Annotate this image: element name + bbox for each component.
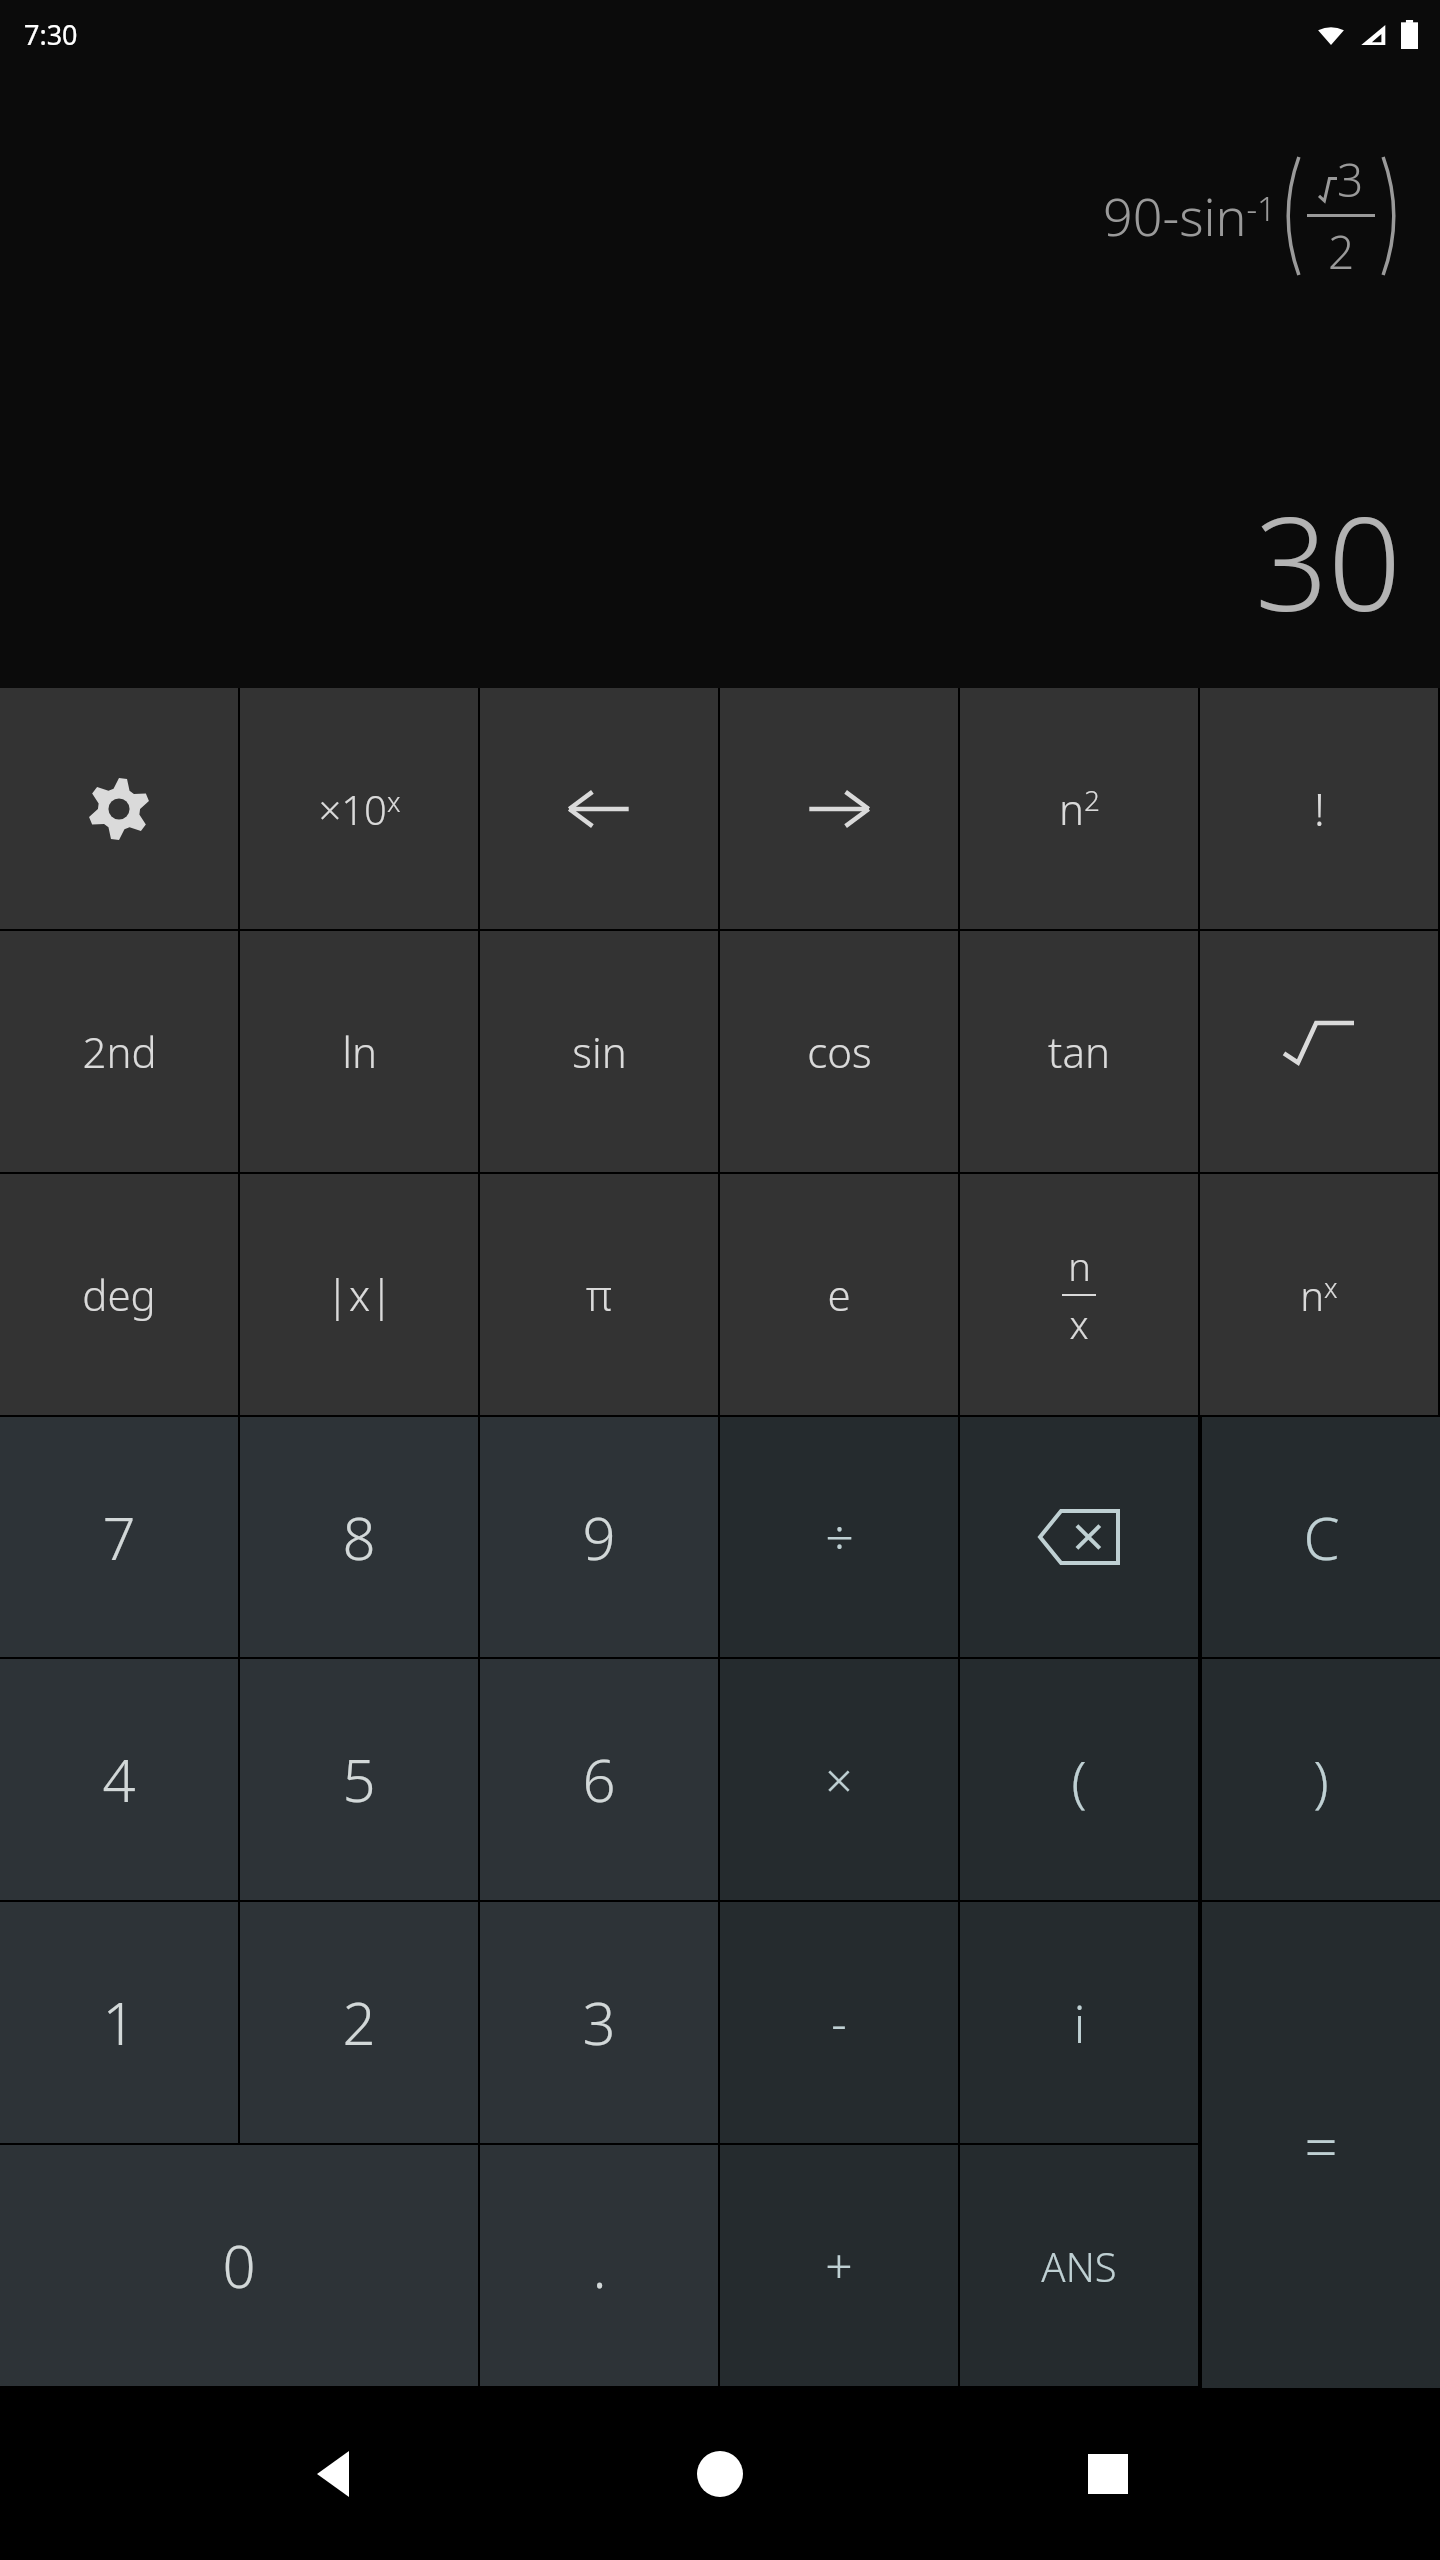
button[interactable]: sin bbox=[480, 931, 718, 1172]
staticText: 9 bbox=[582, 1498, 616, 1577]
staticText: ×10x bbox=[318, 782, 401, 836]
button[interactable]: × bbox=[720, 1659, 958, 1900]
staticText: sin bbox=[572, 1023, 627, 1080]
staticText: - bbox=[831, 1990, 847, 2055]
button[interactable]: Move left bbox=[480, 688, 718, 929]
button[interactable]: - bbox=[720, 1902, 958, 2143]
button[interactable]: ×10x bbox=[240, 688, 478, 929]
staticText: × bbox=[825, 1747, 853, 1812]
button[interactable]: 5 bbox=[240, 1659, 478, 1900]
button[interactable]: cos bbox=[720, 931, 958, 1172]
staticText: 8 bbox=[342, 1498, 376, 1577]
button[interactable]: e bbox=[720, 1174, 958, 1415]
button[interactable]: 1 bbox=[0, 1902, 238, 2143]
button[interactable]: Move right bbox=[720, 688, 958, 929]
button[interactable]: 8 bbox=[240, 1417, 478, 1657]
staticText: 2 bbox=[342, 1983, 376, 2062]
staticText: tan bbox=[1048, 1023, 1110, 1080]
staticText: 0 bbox=[222, 2226, 256, 2305]
staticText: n2 bbox=[1059, 780, 1100, 837]
staticText: C bbox=[1303, 1498, 1340, 1577]
button[interactable]: 2 bbox=[240, 1902, 478, 2143]
staticText: ANS bbox=[1041, 2239, 1117, 2293]
button[interactable]: n2 bbox=[960, 688, 1198, 929]
staticText: 1 bbox=[102, 1983, 136, 2062]
button[interactable]: ln bbox=[240, 931, 478, 1172]
staticText: ln bbox=[342, 1023, 377, 1080]
staticText: 7:30 bbox=[24, 16, 78, 53]
staticText: e bbox=[827, 1266, 851, 1323]
staticText: 6 bbox=[582, 1740, 616, 1819]
staticText: 2nd bbox=[82, 1023, 157, 1080]
button[interactable]: 6 bbox=[480, 1659, 718, 1900]
staticText: 3 bbox=[1337, 148, 1364, 211]
button[interactable]: 0 bbox=[0, 2145, 478, 2386]
staticText: ! bbox=[1314, 779, 1325, 839]
staticText: = bbox=[1304, 2106, 1338, 2185]
button[interactable]: + bbox=[720, 2145, 958, 2386]
staticText: x bbox=[1069, 1298, 1089, 1350]
staticText: ÷ bbox=[825, 1503, 854, 1571]
staticText: . bbox=[592, 2226, 607, 2305]
button[interactable]: ANS bbox=[960, 2145, 1198, 2386]
button[interactable]: Recents bbox=[1053, 2419, 1163, 2529]
staticText: 3 bbox=[582, 1983, 616, 2062]
button[interactable]: |x| bbox=[240, 1174, 478, 1415]
staticText: 5 bbox=[342, 1740, 376, 1819]
button[interactable]: 7 bbox=[0, 1417, 238, 1657]
staticText: nx bbox=[1300, 1268, 1338, 1322]
button[interactable]: ÷ bbox=[720, 1417, 958, 1657]
button[interactable]: Back bbox=[278, 2419, 388, 2529]
staticText: ( bbox=[1071, 1742, 1087, 1818]
button[interactable]: tan bbox=[960, 931, 1198, 1172]
button[interactable]: 4 bbox=[0, 1659, 238, 1900]
staticText: n bbox=[1068, 1240, 1091, 1292]
button[interactable]: Backspace bbox=[960, 1417, 1198, 1657]
button[interactable]: n bbox=[960, 1174, 1198, 1415]
button[interactable]: i bbox=[960, 1902, 1198, 2143]
staticText: ) bbox=[1313, 1742, 1329, 1818]
staticText: cos bbox=[807, 1023, 872, 1080]
staticText: i bbox=[1073, 1987, 1086, 2058]
button[interactable]: ) bbox=[1202, 1659, 1440, 1900]
staticText: 90-sin-1 bbox=[1103, 180, 1276, 251]
button[interactable]: 3 bbox=[480, 1902, 718, 2143]
button[interactable]: ( bbox=[960, 1659, 1198, 1900]
button[interactable]: Square root bbox=[1200, 931, 1438, 1172]
button[interactable]: 9 bbox=[480, 1417, 718, 1657]
button[interactable]: ! bbox=[1200, 688, 1438, 929]
staticText: 7 bbox=[102, 1498, 136, 1577]
staticText: 30 bbox=[1255, 474, 1402, 648]
button[interactable]: = bbox=[1202, 1902, 1440, 2388]
button[interactable]: π bbox=[480, 1174, 718, 1415]
staticText: deg bbox=[82, 1266, 156, 1323]
staticText: + bbox=[825, 2233, 853, 2298]
button[interactable]: Home bbox=[665, 2419, 775, 2529]
staticText: 4 bbox=[102, 1740, 136, 1819]
button[interactable]: nx bbox=[1200, 1174, 1438, 1415]
button[interactable]: deg bbox=[0, 1174, 238, 1415]
staticText: π bbox=[586, 1266, 612, 1323]
button[interactable]: Settings bbox=[0, 688, 238, 929]
staticText: 2 bbox=[1328, 220, 1355, 283]
button[interactable]: C bbox=[1202, 1417, 1440, 1657]
staticText: |x| bbox=[326, 1266, 393, 1323]
button[interactable]: 2nd bbox=[0, 931, 238, 1172]
button[interactable]: . bbox=[480, 2145, 718, 2386]
